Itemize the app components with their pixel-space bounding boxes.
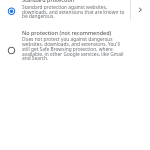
button[interactable]: No protection (not recommended) (0, 27, 150, 62)
button[interactable]: Expand standard protection details (131, 0, 150, 24)
button[interactable]: Standard protection (0, 0, 150, 24)
staticText: Does not protect you against dangerous w… (22, 36, 126, 62)
staticText: No protection (not recommended) (22, 29, 111, 37)
staticText: Standard protection (22, 0, 74, 3)
staticText: Standard protection against websites, do… (22, 3, 126, 20)
